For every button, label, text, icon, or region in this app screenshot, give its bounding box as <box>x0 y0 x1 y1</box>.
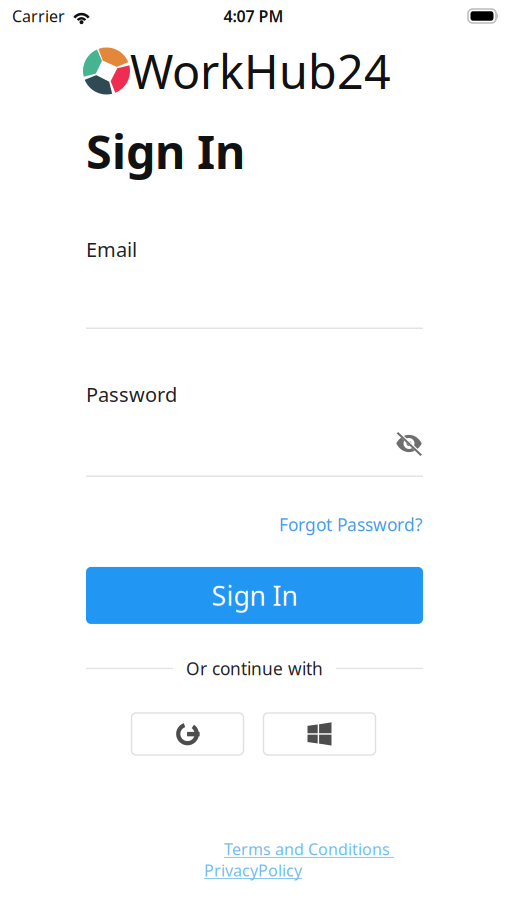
staticText: Or continue with <box>186 657 323 680</box>
staticText: Email <box>86 236 137 262</box>
button[interactable]: Email <box>86 236 423 329</box>
staticText: 4:07 PM <box>223 5 283 27</box>
staticText: Carrier <box>12 5 65 27</box>
button[interactable]: Terms and Conditions <box>224 838 394 860</box>
button[interactable]: Forgot Password? <box>279 513 423 536</box>
staticText: WorkHub24 <box>130 40 391 102</box>
staticText: Terms and Conditions <box>224 838 394 860</box>
button[interactable]: PrivacyPolicy <box>204 860 302 881</box>
staticText: PrivacyPolicy <box>204 860 302 881</box>
staticText: Sign In <box>211 578 297 613</box>
button[interactable]: Show password <box>395 432 423 455</box>
staticText: Forgot Password? <box>279 513 423 536</box>
button[interactable]: Sign in with Microsoft <box>263 713 375 755</box>
button[interactable]: Sign In <box>86 567 423 624</box>
button[interactable]: Password <box>86 381 177 408</box>
staticText: Password <box>86 381 177 408</box>
staticText: Sign In <box>86 120 245 182</box>
button[interactable]: Sign in with Google <box>131 713 243 755</box>
